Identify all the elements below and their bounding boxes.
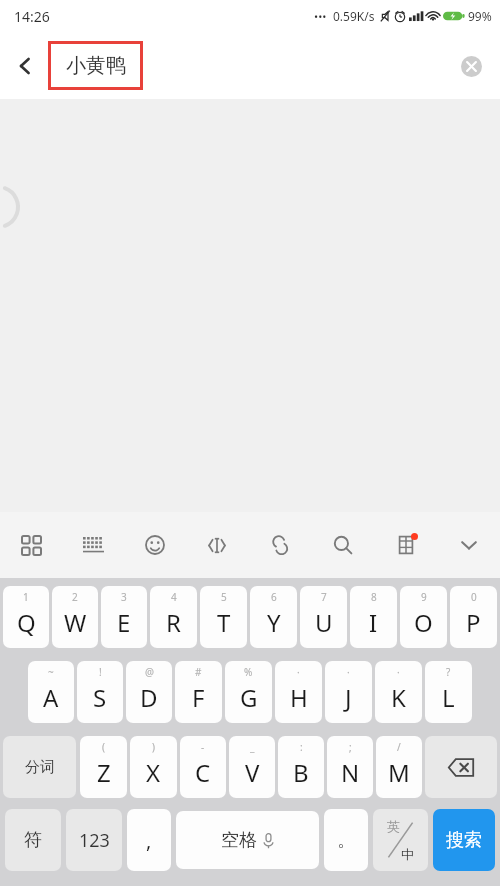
button[interactable]: 分词 [3, 736, 76, 798]
staticText: 8 [371, 590, 377, 604]
staticText: S [93, 681, 107, 714]
staticText: % [244, 665, 253, 679]
staticText: ? [446, 665, 451, 679]
button[interactable]: @ [126, 661, 172, 723]
button[interactable]: Emoji [124, 512, 186, 578]
button[interactable]: - [180, 736, 226, 798]
button[interactable]: % [225, 661, 272, 723]
staticText: F [192, 681, 205, 714]
staticText: 分词 [25, 758, 55, 777]
staticText: ( [102, 740, 105, 754]
button[interactable]: Backspace [425, 736, 497, 798]
button[interactable]: ! [77, 661, 123, 723]
staticText: 5 [221, 590, 227, 604]
button[interactable]: , [127, 809, 171, 871]
button[interactable]: 5 [200, 586, 247, 648]
staticText: 小黄鸭 [66, 53, 126, 78]
button[interactable]: Hide keyboard [437, 512, 500, 578]
staticText: 0 [471, 590, 477, 604]
staticText: Q [17, 606, 36, 639]
button[interactable]: # [175, 661, 222, 723]
staticText: 符 [24, 829, 42, 852]
staticText: 空格 [221, 829, 257, 852]
staticText: · [397, 665, 400, 679]
staticText: T [217, 606, 231, 639]
button[interactable]: Clear [452, 47, 490, 85]
staticText: ; [349, 740, 352, 754]
staticText: C [195, 756, 211, 789]
staticText: , [146, 827, 152, 854]
button[interactable]: Skin [374, 512, 437, 578]
button[interactable]: 符 [5, 809, 61, 871]
button[interactable]: 搜索 [433, 809, 495, 871]
button[interactable]: 2 [52, 586, 98, 648]
staticText: 1 [23, 590, 29, 604]
button[interactable]: ? [425, 661, 472, 723]
staticText: · [297, 665, 300, 679]
staticText: 6 [271, 590, 277, 604]
staticText: D [140, 681, 158, 714]
staticText: 0.59K/s [333, 8, 375, 24]
staticText: @ [145, 665, 154, 679]
button[interactable]: 123 [66, 809, 122, 871]
button[interactable]: ~ [28, 661, 74, 723]
staticText: H [290, 681, 308, 714]
staticText: 99% [468, 8, 492, 24]
staticText: A [43, 681, 59, 714]
staticText: 7 [321, 590, 327, 604]
button[interactable]: 9 [400, 586, 447, 648]
button[interactable]: 8 [350, 586, 397, 648]
button[interactable]: · [275, 661, 322, 723]
staticText: # [195, 665, 202, 679]
button[interactable]: Keyboard layout [62, 512, 124, 578]
staticText: 。 [337, 829, 355, 852]
button[interactable]: : [278, 736, 324, 798]
staticText: I [369, 606, 378, 639]
button[interactable]: ) [130, 736, 177, 798]
button[interactable]: ( [80, 736, 127, 798]
staticText: R [166, 606, 181, 639]
button[interactable]: · [375, 661, 422, 723]
staticText: · [347, 665, 350, 679]
button[interactable]: Clipboard [248, 512, 311, 578]
staticText: U [315, 606, 333, 639]
staticText: : [300, 740, 303, 754]
staticText: 3 [121, 590, 127, 604]
staticText: 14:26 [14, 7, 50, 26]
button[interactable]: Back [6, 47, 44, 85]
button[interactable]: 4 [150, 586, 197, 648]
staticText: W [64, 606, 87, 639]
staticText: J [345, 681, 352, 714]
button[interactable]: Cursor [186, 512, 248, 578]
button[interactable]: 1 [3, 586, 49, 648]
staticText: Z [97, 756, 111, 789]
button[interactable]: 3 [101, 586, 147, 648]
staticText: X [146, 756, 161, 789]
staticText: M [388, 756, 410, 789]
button[interactable]: 空格 [176, 811, 319, 869]
button[interactable]: 。 [324, 809, 368, 871]
button[interactable]: 0 [450, 586, 497, 648]
button[interactable]: Search [311, 512, 374, 578]
button[interactable]: 7 [300, 586, 347, 648]
staticText: 搜索 [446, 829, 482, 852]
staticText: 英 [387, 818, 400, 834]
button[interactable]: Apps [0, 512, 62, 578]
button[interactable]: 6 [250, 586, 297, 648]
staticText: 9 [421, 590, 427, 604]
button[interactable]: ; [327, 736, 373, 798]
staticText: 中 [401, 846, 414, 862]
staticText: P [466, 606, 481, 639]
button[interactable]: / [376, 736, 422, 798]
staticText: O [414, 606, 433, 639]
staticText: _ [250, 740, 255, 754]
button[interactable]: Switch English Chinese [373, 809, 428, 871]
button[interactable]: _ [229, 736, 275, 798]
staticText: ! [99, 665, 102, 679]
staticText: ••• [314, 9, 327, 24]
staticText: E [117, 606, 131, 639]
staticText: ~ [48, 665, 54, 679]
staticText: 4 [171, 590, 177, 604]
staticText: ) [152, 740, 155, 754]
button[interactable]: · [325, 661, 372, 723]
